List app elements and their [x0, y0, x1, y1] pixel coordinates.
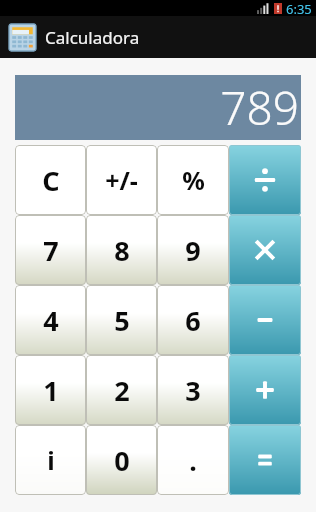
button[interactable]: minus — [229, 285, 301, 355]
staticText: 5 — [114, 302, 130, 339]
staticText: 3 — [185, 372, 201, 409]
other: plus — [248, 373, 282, 407]
button[interactable]: 4 — [15, 285, 86, 355]
staticText: 6 — [185, 302, 201, 339]
staticText: % — [182, 163, 205, 197]
staticText: 789 — [220, 76, 299, 139]
button[interactable]: 2 — [86, 355, 157, 425]
staticText: i — [47, 443, 55, 477]
button[interactable]: 3 — [157, 355, 229, 425]
button[interactable]: 7 — [15, 215, 86, 285]
button[interactable]: % — [157, 145, 229, 215]
other: minus — [248, 303, 282, 337]
staticText: . — [189, 442, 197, 479]
staticText: 1 — [43, 372, 59, 409]
staticText: 6:35 — [286, 0, 312, 16]
other: multiply — [248, 233, 282, 267]
button[interactable]: plus — [229, 355, 301, 425]
button[interactable]: 8 — [86, 215, 157, 285]
staticText: Calculadora — [45, 26, 140, 49]
staticText: 2 — [114, 372, 130, 409]
button[interactable]: 5 — [86, 285, 157, 355]
button[interactable]: 9 — [157, 215, 229, 285]
staticText: 0 — [114, 442, 130, 479]
button[interactable]: 6 — [157, 285, 229, 355]
staticText: 8 — [114, 232, 130, 269]
other: equals — [248, 443, 282, 477]
other: divide — [248, 163, 282, 197]
staticText: +/- — [105, 163, 138, 197]
staticText: 7 — [43, 232, 59, 269]
button[interactable]: 0 — [86, 425, 157, 495]
staticText: 9 — [185, 232, 201, 269]
button[interactable]: multiply — [229, 215, 301, 285]
button[interactable]: divide — [229, 145, 301, 215]
staticText: C — [42, 162, 60, 199]
button[interactable]: . — [157, 425, 229, 495]
button[interactable]: 1 — [15, 355, 86, 425]
button[interactable]: equals — [229, 425, 301, 495]
button[interactable]: C — [15, 145, 86, 215]
button[interactable]: +/- — [86, 145, 157, 215]
staticText: 4 — [43, 302, 59, 339]
button[interactable]: i — [15, 425, 86, 495]
